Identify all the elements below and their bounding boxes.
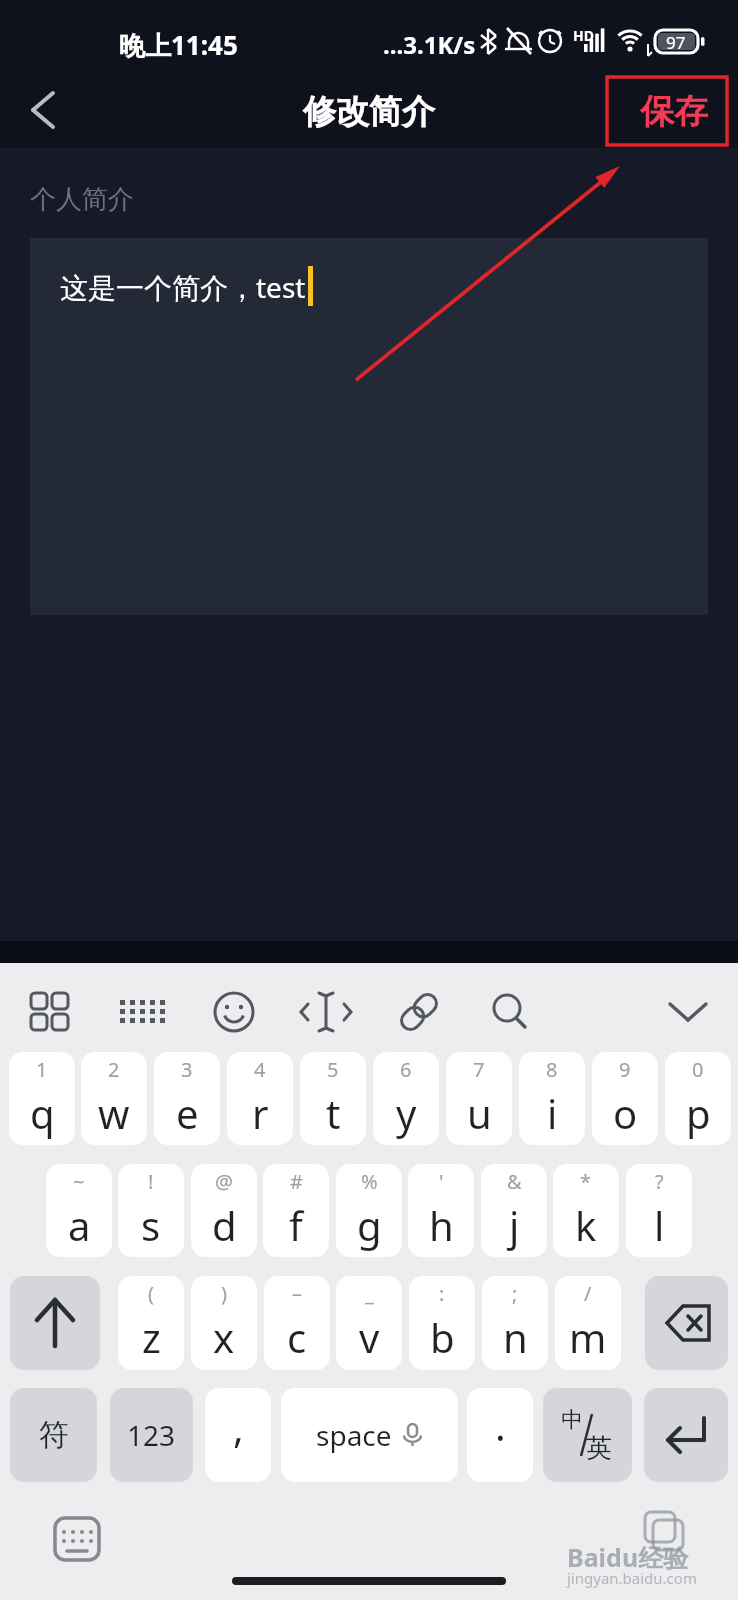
button[interactable]: 6 — [373, 1052, 439, 1145]
button[interactable] — [389, 982, 449, 1042]
staticText: 英 — [586, 1432, 612, 1465]
button[interactable]: ? — [626, 1164, 692, 1257]
staticText: ? — [655, 1168, 664, 1195]
button[interactable]: . — [467, 1388, 533, 1482]
staticText: w — [98, 1086, 130, 1140]
staticText: 8 — [546, 1056, 558, 1083]
staticText: f — [289, 1198, 303, 1252]
button[interactable]: 这是一个简介，test — [30, 238, 708, 615]
staticText: t — [326, 1086, 341, 1140]
button[interactable] — [645, 1276, 728, 1370]
staticText: ' — [439, 1168, 444, 1195]
button[interactable]: , — [205, 1388, 271, 1482]
staticText: 9 — [619, 1056, 631, 1083]
staticText: ! — [148, 1168, 154, 1195]
button[interactable]: 5 — [300, 1052, 366, 1145]
button[interactable]: ( — [118, 1276, 184, 1370]
staticText: jingyan.baidu.com — [567, 1568, 697, 1588]
button[interactable] — [20, 982, 80, 1042]
button[interactable]: 符 — [10, 1388, 97, 1482]
staticText: n — [503, 1310, 528, 1364]
button[interactable] — [204, 982, 264, 1042]
button[interactable]: 1 — [9, 1052, 75, 1145]
button[interactable]: space — [281, 1388, 458, 1482]
button[interactable]: – — [264, 1276, 330, 1370]
staticText: s — [141, 1198, 161, 1252]
staticText: l — [654, 1198, 665, 1252]
button[interactable]: : — [409, 1276, 475, 1370]
staticText: 中 — [561, 1406, 583, 1434]
button[interactable]: / — [555, 1276, 621, 1370]
button[interactable]: ' — [408, 1164, 474, 1257]
button[interactable]: 3 — [154, 1052, 220, 1145]
staticText: b — [430, 1310, 455, 1364]
staticText: d — [212, 1198, 237, 1252]
button[interactable]: 4 — [227, 1052, 293, 1145]
staticText: Baidu经验 — [567, 1540, 689, 1574]
staticText: a — [68, 1198, 91, 1252]
staticText: 97 — [666, 31, 686, 54]
staticText: i — [547, 1086, 558, 1140]
button[interactable] — [658, 982, 718, 1042]
staticText: z — [142, 1310, 161, 1364]
staticText: 晚上11:45 — [119, 27, 238, 63]
staticText: ~ — [73, 1168, 85, 1195]
button[interactable]: 8 — [519, 1052, 585, 1145]
button[interactable]: 123 — [110, 1388, 193, 1482]
staticText: ; — [512, 1280, 518, 1307]
staticText: 保存 — [640, 90, 708, 133]
button[interactable]: 2 — [81, 1052, 147, 1145]
staticText: 123 — [127, 1416, 176, 1454]
staticText: 5 — [327, 1056, 339, 1083]
button[interactable]: ) — [191, 1276, 257, 1370]
button[interactable]: 0 — [665, 1052, 731, 1145]
button[interactable] — [644, 1388, 728, 1482]
button[interactable]: 9 — [592, 1052, 658, 1145]
button[interactable] — [480, 982, 540, 1042]
staticText: _ — [365, 1280, 374, 1307]
button[interactable]: _ — [336, 1276, 402, 1370]
button[interactable]: @ — [191, 1164, 257, 1257]
staticText: q — [30, 1086, 55, 1140]
button[interactable]: % — [336, 1164, 402, 1257]
button[interactable]: ; — [482, 1276, 548, 1370]
button[interactable]: ~ — [46, 1164, 112, 1257]
button[interactable]: 中 — [543, 1388, 632, 1482]
staticText: p — [686, 1086, 711, 1140]
staticText: c — [287, 1310, 307, 1364]
staticText: , — [233, 1400, 244, 1454]
staticText: y — [396, 1086, 417, 1140]
staticText: / — [584, 1280, 592, 1307]
staticText: HD — [573, 26, 594, 45]
staticText: ( — [148, 1280, 154, 1307]
staticText: 6 — [400, 1056, 412, 1083]
staticText: m — [569, 1310, 607, 1364]
staticText: 2 — [108, 1056, 120, 1083]
staticText: @ — [215, 1168, 233, 1195]
staticText: . — [495, 1398, 506, 1452]
staticText: 个人简介 — [30, 183, 134, 216]
button[interactable] — [50, 1512, 104, 1566]
button[interactable] — [10, 1276, 100, 1370]
staticText: j — [509, 1198, 520, 1252]
staticText: 4 — [254, 1056, 266, 1083]
staticText: 这是一个简介，test — [60, 268, 306, 306]
button[interactable] — [112, 982, 172, 1042]
staticText: x — [213, 1310, 235, 1364]
staticText: ...3.1K/s — [383, 28, 476, 61]
button[interactable]: 7 — [446, 1052, 512, 1145]
button[interactable]: * — [553, 1164, 619, 1257]
staticText: 符 — [39, 1416, 69, 1454]
staticText: g — [357, 1198, 382, 1252]
button[interactable]: & — [481, 1164, 547, 1257]
button[interactable] — [20, 85, 70, 135]
button[interactable]: 保存 — [607, 77, 727, 145]
staticText: # — [290, 1168, 303, 1195]
staticText: h — [429, 1198, 454, 1252]
button[interactable] — [296, 982, 356, 1042]
staticText: : — [439, 1280, 445, 1307]
staticText: r — [252, 1086, 269, 1140]
button[interactable]: # — [263, 1164, 329, 1257]
button[interactable]: ! — [118, 1164, 184, 1257]
staticText: u — [467, 1086, 492, 1140]
